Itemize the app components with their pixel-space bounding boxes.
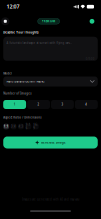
staticText: Number of Images [3, 92, 31, 95]
button[interactable]: 4 [75, 100, 98, 109]
button[interactable]: 1 [3, 100, 26, 109]
button[interactable]: 3 [51, 100, 74, 109]
staticText: 1 [14, 103, 16, 106]
button[interactable]: 16:9 [33, 124, 39, 129]
staticText: 12:07 [6, 3, 19, 10]
staticText: Nano-Banana (Gemini Native) [6, 80, 45, 83]
button[interactable]: Generate Image [3, 136, 98, 148]
button[interactable]: Nano-Banana (Gemini Native) [3, 76, 98, 86]
button[interactable]: 2 [27, 100, 50, 109]
button[interactable]: 4:3 [18, 124, 24, 129]
button[interactable]: 9:16 [25, 124, 31, 129]
button[interactable]: 1:1 [3, 124, 9, 129]
staticText: Describe Your Thoughts [3, 31, 38, 34]
staticText: 0/500 [86, 57, 95, 61]
staticText: A futuristic landscape at sunset with fl… [6, 41, 72, 45]
staticText: 2 [37, 103, 39, 106]
staticText: 4:3 [18, 125, 23, 128]
staticText: 1:1 [4, 125, 9, 128]
button[interactable]: Gallery [1, 17, 10, 26]
button[interactable]: Profile [87, 17, 96, 26]
staticText: Aspect Ratio / Dimensions [3, 116, 41, 119]
button[interactable]: 3:4 [11, 124, 16, 129]
staticText: 3:4 [11, 125, 16, 128]
staticText: 9:16 [26, 123, 31, 130]
staticText: Images are generated with AI and may var… [22, 198, 79, 201]
staticText: Generate Image [41, 141, 66, 144]
staticText: 4 [85, 103, 87, 106]
staticText: 16:9 [33, 123, 38, 130]
button[interactable]: PREMIUM [38, 18, 60, 24]
staticText: Model [3, 72, 12, 75]
staticText: 3 [61, 103, 63, 106]
staticText: PREMIUM [42, 19, 56, 23]
